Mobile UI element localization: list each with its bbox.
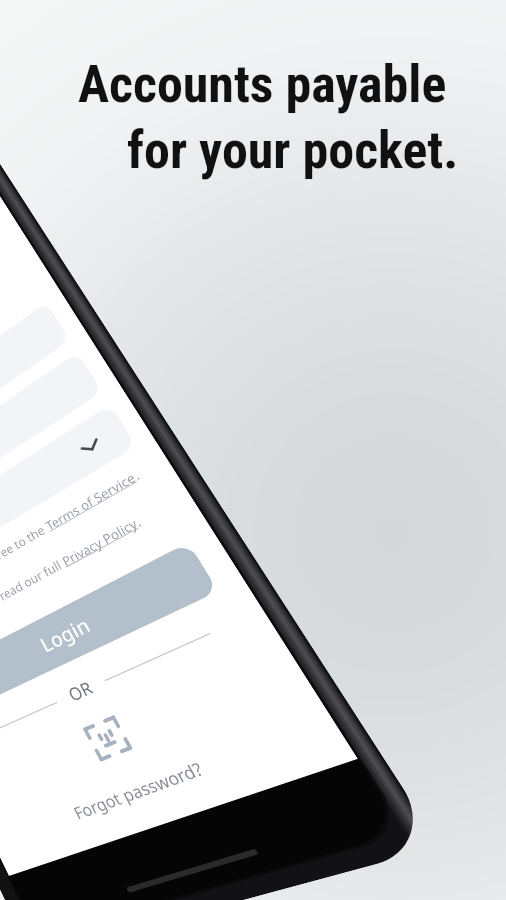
staticText: OR (64, 675, 97, 707)
staticText: By signing up you agree to the (0, 519, 51, 615)
button[interactable]: Forgot password? (69, 756, 208, 824)
staticText: . (131, 512, 144, 530)
button[interactable]: Text field (0, 301, 70, 494)
button[interactable]: Face ID login (83, 715, 133, 762)
staticText: for your pocket. (127, 120, 459, 181)
staticText: You also agree to read our full (0, 554, 67, 646)
button[interactable]: Text field (0, 352, 103, 541)
staticText: Accounts payable (78, 54, 447, 115)
staticText: Terms of Service (42, 468, 139, 534)
staticText: Privacy Policy (59, 514, 140, 569)
staticText: Login (35, 611, 95, 659)
button[interactable]: You also agree to read our full (0, 495, 177, 646)
staticText: . (130, 466, 143, 483)
button[interactable]: Select country (0, 404, 137, 590)
button[interactable]: By signing up you agree to the (0, 459, 154, 615)
button[interactable]: Login (0, 542, 219, 714)
